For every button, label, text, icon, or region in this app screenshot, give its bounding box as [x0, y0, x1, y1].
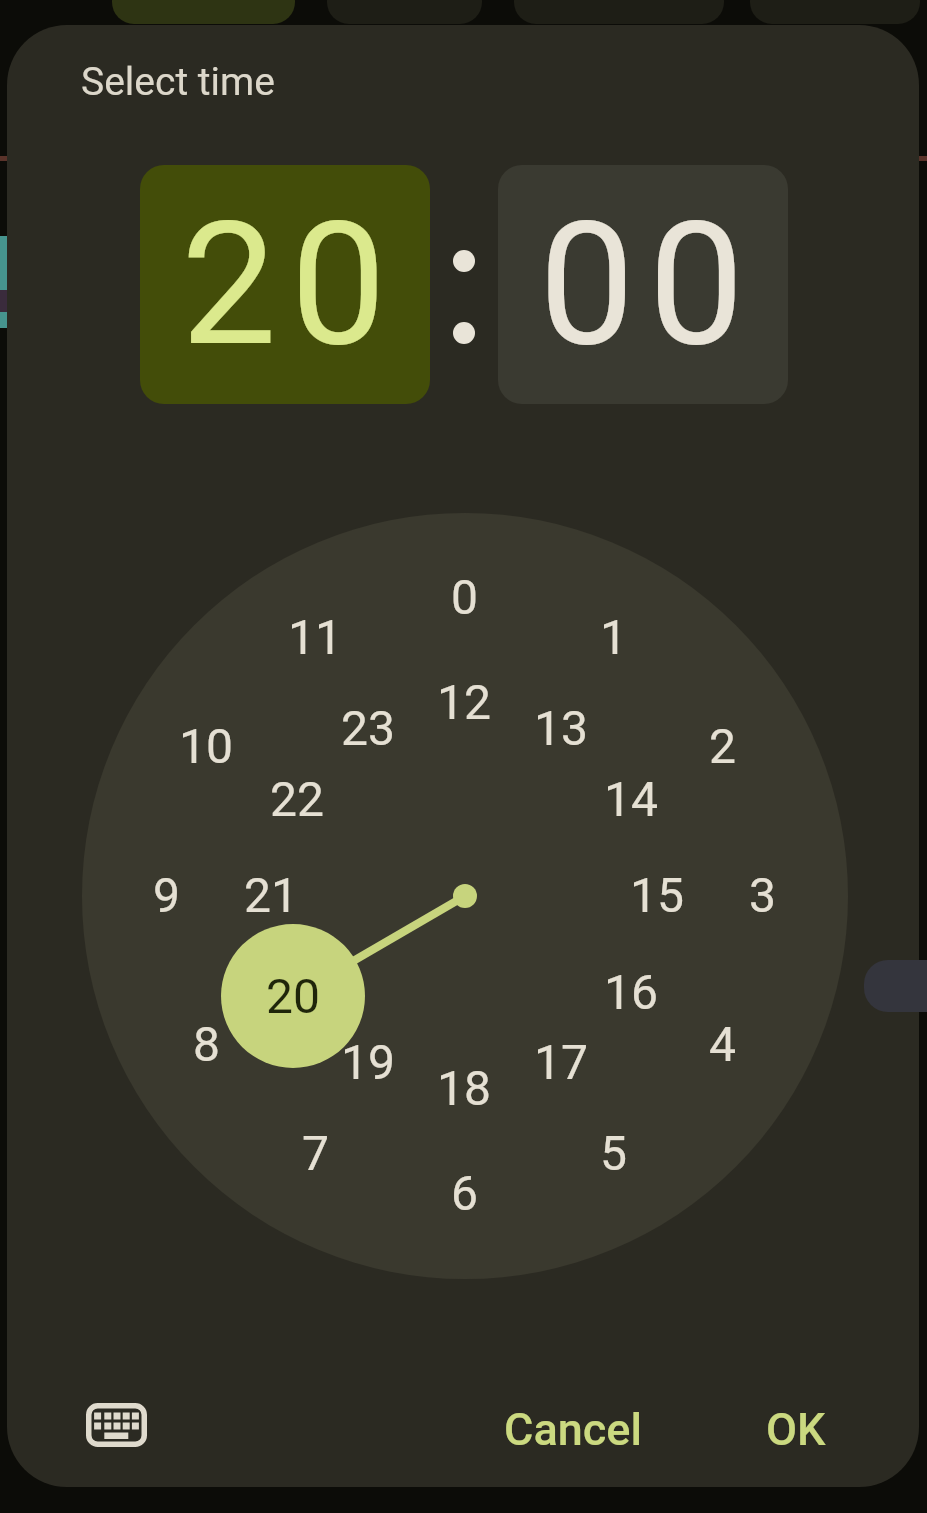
staticText: 17	[534, 1034, 588, 1090]
staticText: 11	[288, 609, 342, 665]
button[interactable]	[71, 1389, 161, 1461]
button[interactable]: 20	[140, 165, 430, 404]
staticText: 19	[341, 1034, 395, 1090]
staticText: 12	[437, 674, 491, 730]
staticText: 20	[266, 968, 320, 1024]
button[interactable]: Cancel	[483, 1399, 663, 1459]
staticText: 23	[341, 700, 395, 756]
staticText: 8	[193, 1016, 220, 1072]
staticText: 0	[451, 569, 478, 625]
button[interactable]: 0	[82, 513, 848, 1279]
staticText: 9	[153, 867, 180, 923]
staticText: 14	[604, 771, 658, 827]
staticText: Cancel	[504, 1403, 643, 1456]
staticText: 16	[604, 964, 658, 1020]
staticText: 15	[630, 867, 684, 923]
staticText: 13	[534, 700, 588, 756]
staticText: 7	[302, 1125, 329, 1181]
staticText: 4	[709, 1016, 736, 1072]
button[interactable]: 00	[498, 165, 788, 404]
button[interactable]: OK	[736, 1399, 856, 1459]
staticText: 20	[181, 185, 401, 384]
staticText: 10	[179, 718, 233, 774]
staticText: 18	[437, 1060, 491, 1116]
staticText: 5	[600, 1125, 627, 1181]
staticText: 22	[270, 771, 324, 827]
staticText: 00	[539, 185, 759, 384]
staticText: 1	[600, 609, 627, 665]
staticText: Select time	[81, 59, 275, 105]
staticText: 3	[749, 867, 776, 923]
staticText: 6	[451, 1165, 478, 1221]
staticText: OK	[766, 1403, 826, 1456]
staticText: 21	[244, 867, 298, 923]
staticText: 2	[709, 718, 736, 774]
